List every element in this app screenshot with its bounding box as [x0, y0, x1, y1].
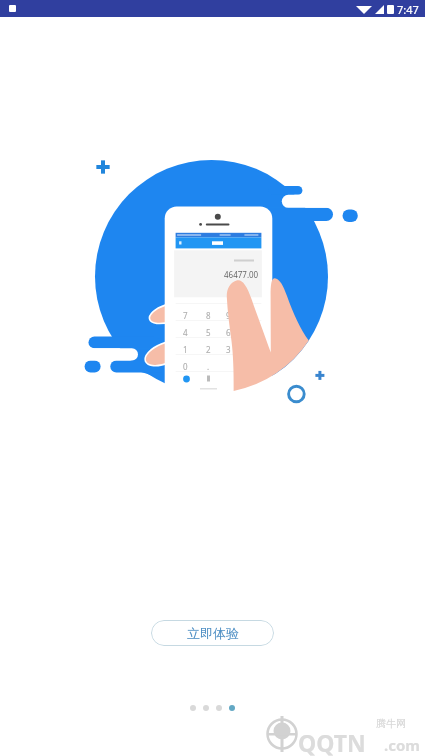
button[interactable]: 5 — [200, 326, 216, 338]
staticText: 5 — [206, 327, 211, 338]
button[interactable]: 1 — [177, 343, 193, 355]
button[interactable]: 2 — [200, 343, 216, 355]
staticText: 46477.00 — [224, 269, 259, 280]
button[interactable]: 9 — [220, 309, 236, 321]
staticText: QQTN — [298, 727, 366, 756]
button[interactable]: 立即体验 — [151, 620, 274, 646]
staticText: 3 — [226, 344, 231, 355]
button[interactable]: 8 — [200, 309, 216, 321]
button[interactable]: 3 — [220, 343, 236, 355]
button[interactable] — [216, 705, 222, 711]
button[interactable]: 6 — [220, 326, 236, 338]
staticText: 6 — [226, 327, 231, 338]
staticText: 1 — [183, 344, 188, 355]
staticText: . — [207, 361, 210, 372]
staticText: 4 — [183, 327, 188, 338]
button[interactable]: . — [200, 360, 216, 372]
button[interactable] — [190, 705, 196, 711]
staticText: 0 — [183, 361, 188, 372]
staticText: 7 — [183, 310, 188, 321]
staticText: 9 — [226, 310, 231, 321]
button[interactable]: 7 — [177, 309, 193, 321]
staticText: 7:47 — [397, 2, 419, 17]
staticText: 腾牛网 — [376, 717, 406, 730]
staticText: 8 — [206, 310, 211, 321]
staticText: 立即体验 — [187, 625, 239, 641]
button[interactable] — [229, 705, 235, 711]
button[interactable] — [203, 705, 209, 711]
staticText: .com — [384, 735, 420, 755]
button[interactable]: 0 — [177, 360, 193, 372]
button[interactable]: 4 — [177, 326, 193, 338]
staticText: 2 — [206, 344, 211, 355]
